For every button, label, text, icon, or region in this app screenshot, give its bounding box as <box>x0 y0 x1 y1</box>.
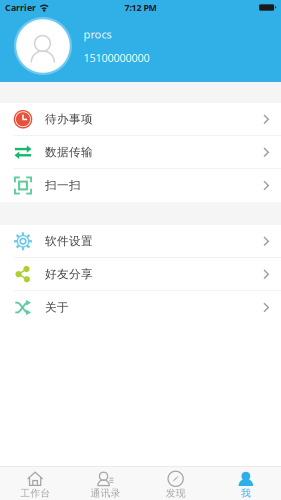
button[interactable]: 发现 <box>140 466 211 500</box>
button[interactable]: 我 <box>211 466 281 500</box>
staticText: 发现 <box>166 487 186 499</box>
button[interactable]: 好友分享 <box>0 258 281 291</box>
button[interactable]: 扫一扫 <box>0 169 281 202</box>
button[interactable]: 软件设置 <box>0 225 281 258</box>
staticText: 我 <box>241 487 251 499</box>
staticText: Carrier <box>5 1 36 13</box>
button[interactable]: 工作台 <box>0 466 70 500</box>
staticText: 通讯录 <box>90 487 120 499</box>
staticText: 好友分享 <box>45 267 93 281</box>
staticText: procs <box>83 27 111 42</box>
staticText: 待办事项 <box>45 112 93 126</box>
button[interactable]: 待办事项 <box>0 103 281 136</box>
staticText: 数据传输 <box>45 145 93 159</box>
staticText: 工作台 <box>20 487 50 499</box>
button[interactable]: 通讯录 <box>70 466 140 500</box>
staticText: 扫一扫 <box>45 178 81 193</box>
button[interactable]: 数据传输 <box>0 136 281 169</box>
staticText: 软件设置 <box>45 234 93 248</box>
staticText: 7:12 PM <box>124 1 156 13</box>
button[interactable]: 关于 <box>0 291 281 324</box>
staticText: 关于 <box>45 300 69 315</box>
staticText: 15100000000 <box>83 50 149 65</box>
